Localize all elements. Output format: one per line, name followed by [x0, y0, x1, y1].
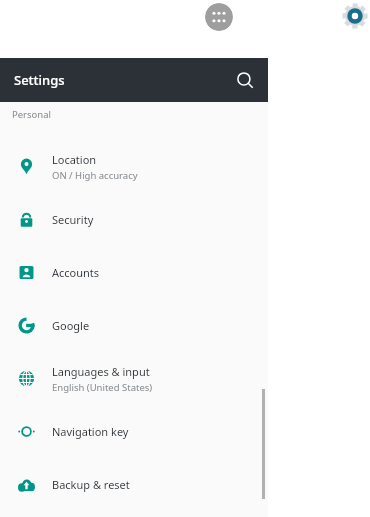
staticText: Personal	[12, 108, 51, 121]
button[interactable]: Navigation key	[0, 405, 268, 458]
button[interactable]: Google	[0, 299, 268, 352]
staticText: Accounts	[52, 265, 100, 280]
staticText: Navigation key	[52, 424, 129, 439]
staticText: ON / High accuracy	[52, 169, 138, 182]
button[interactable]: All apps	[205, 3, 233, 31]
staticText: Location	[52, 152, 97, 167]
staticText: Google	[52, 318, 90, 333]
button[interactable]: Accounts	[0, 246, 268, 299]
button[interactable]: Settings	[341, 2, 369, 30]
staticText: Settings	[14, 71, 65, 89]
staticText: Languages & input	[52, 364, 150, 379]
button[interactable]: Security	[0, 193, 268, 246]
button[interactable]: Search	[231, 66, 259, 94]
staticText: Backup & reset	[52, 477, 130, 492]
staticText: English (United States)	[52, 381, 153, 394]
button[interactable]: Backup & reset	[0, 458, 268, 511]
button[interactable]: Languages & input	[0, 352, 268, 405]
staticText: Security	[52, 212, 94, 227]
button[interactable]: Location	[0, 140, 268, 193]
